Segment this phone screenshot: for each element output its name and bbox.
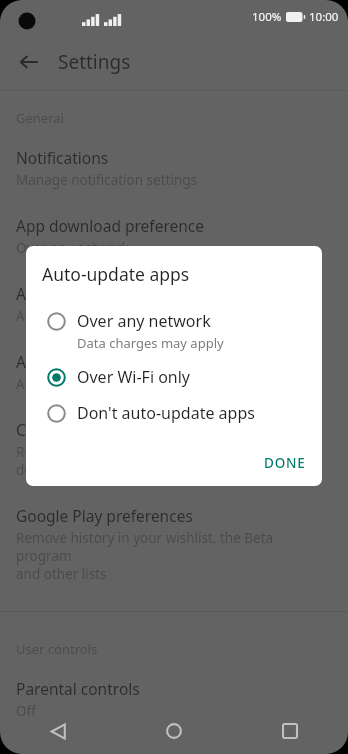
staticText: Remove history in your wishlist, the Bet…: [16, 529, 332, 583]
staticText: General: [16, 109, 64, 127]
button[interactable]: Don't auto-update apps: [26, 396, 322, 432]
staticText: Auto-update apps over Wi-Fi only: [16, 307, 226, 325]
staticText: Manage notification settings: [16, 171, 198, 189]
staticText: Auto-update apps: [42, 262, 190, 286]
button[interactable]: Google Play preferences: [0, 491, 348, 595]
staticText: Over any network: [16, 239, 129, 257]
staticText: Settings: [58, 49, 131, 75]
button[interactable]: DONE: [248, 444, 322, 482]
staticText: User controls: [16, 640, 98, 658]
button[interactable]: Over any network: [26, 304, 322, 360]
staticText: Over Wi-Fi only: [77, 366, 191, 388]
staticText: Data charges may apply: [77, 334, 224, 352]
staticText: Notifications: [16, 147, 109, 168]
staticText: Off: [16, 702, 36, 720]
button[interactable]: Recent apps: [232, 708, 348, 754]
staticText: 10:00: [309, 9, 339, 25]
button[interactable]: Parental controls: [0, 664, 348, 732]
staticText: DONE: [264, 454, 306, 472]
staticText: 100%: [252, 9, 282, 25]
button[interactable]: Back: [12, 45, 46, 79]
button[interactable]: Auto-update apps: [0, 269, 348, 337]
staticText: Google Play preferences: [16, 505, 193, 526]
staticText: Don't auto-update apps: [77, 402, 255, 424]
staticText: Clear local search history: [16, 419, 198, 440]
staticText: Remove all the searches you have perform…: [16, 443, 302, 479]
button[interactable]: App download preference: [0, 201, 348, 269]
staticText: Auto-play videos: [16, 351, 137, 372]
button[interactable]: Notifications: [0, 133, 348, 201]
staticText: Auto-update apps: [16, 283, 147, 304]
staticText: Parental controls: [16, 678, 140, 699]
staticText: Over any network: [77, 310, 211, 332]
button[interactable]: Back: [0, 708, 116, 754]
button[interactable]: Home: [116, 708, 232, 754]
staticText: App download preference: [16, 215, 205, 236]
button[interactable]: Over Wi-Fi only: [26, 360, 322, 396]
button[interactable]: Clear local search history: [0, 405, 348, 491]
button[interactable]: Auto-play videos: [0, 337, 348, 405]
staticText: Auto-play videos over Wi-Fi only: [16, 375, 218, 393]
